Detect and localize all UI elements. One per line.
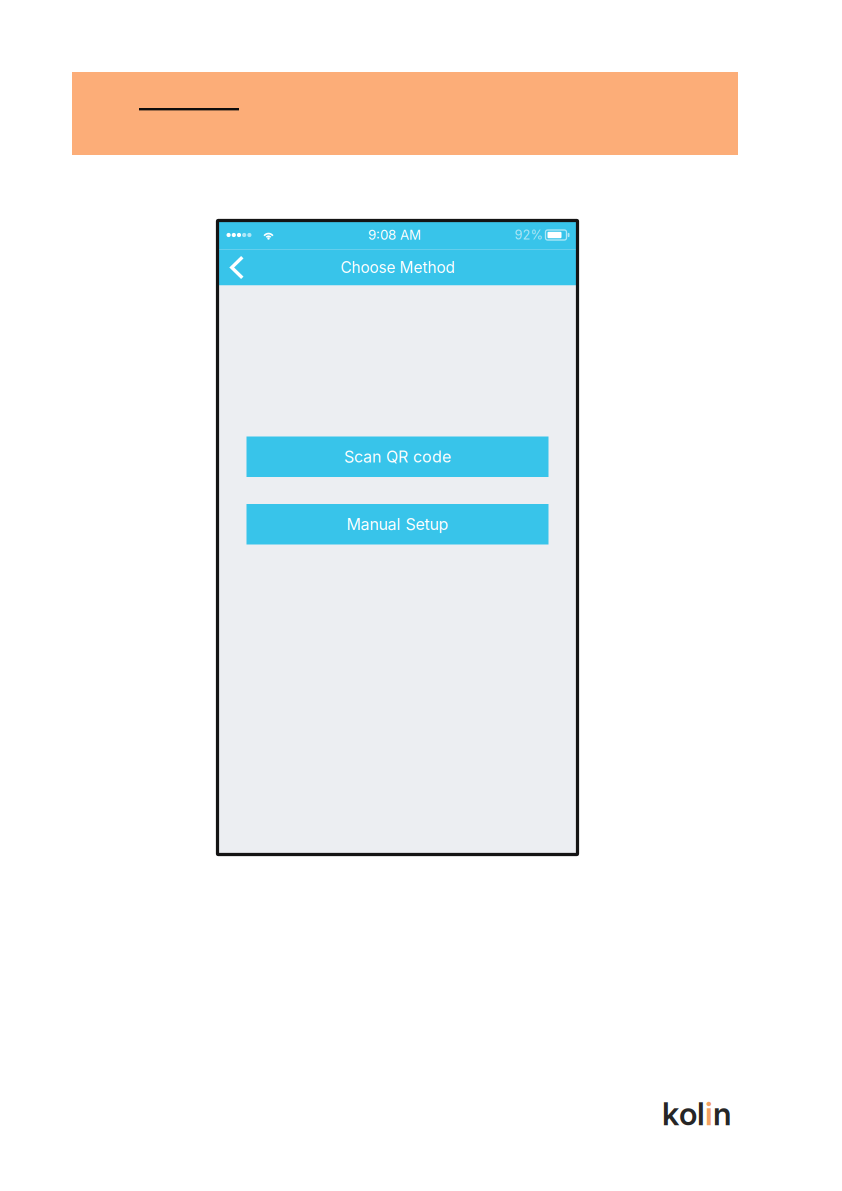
staticText: 92% [514, 227, 542, 243]
button[interactable]: Manual Setup [246, 504, 548, 544]
staticText: Choose Method [340, 258, 454, 277]
staticText: n [713, 1095, 732, 1133]
staticText: Manual Setup [346, 515, 448, 534]
staticText: kol [662, 1095, 705, 1133]
button[interactable]: Scan QR code [246, 436, 548, 477]
staticText: 9:08 AM [368, 227, 421, 243]
button[interactable]: Back [217, 247, 259, 288]
staticText: i [705, 1095, 713, 1133]
staticText: Scan QR code [344, 447, 451, 466]
